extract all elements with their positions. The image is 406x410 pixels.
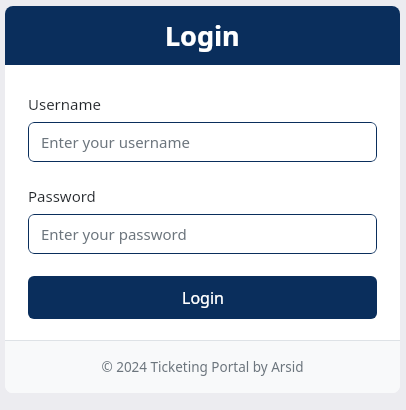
staticText: Password xyxy=(28,186,96,206)
staticText: Username xyxy=(28,94,101,114)
staticText: Enter your username xyxy=(41,132,190,152)
button[interactable]: Password xyxy=(28,214,377,254)
staticText: Login xyxy=(165,17,240,54)
staticText: © 2024 Ticketing Portal by Arsid xyxy=(101,358,304,376)
button[interactable]: Login xyxy=(28,276,377,319)
button[interactable]: Username xyxy=(28,122,377,162)
staticText: Login xyxy=(182,287,224,309)
staticText: Enter your password xyxy=(41,224,187,244)
